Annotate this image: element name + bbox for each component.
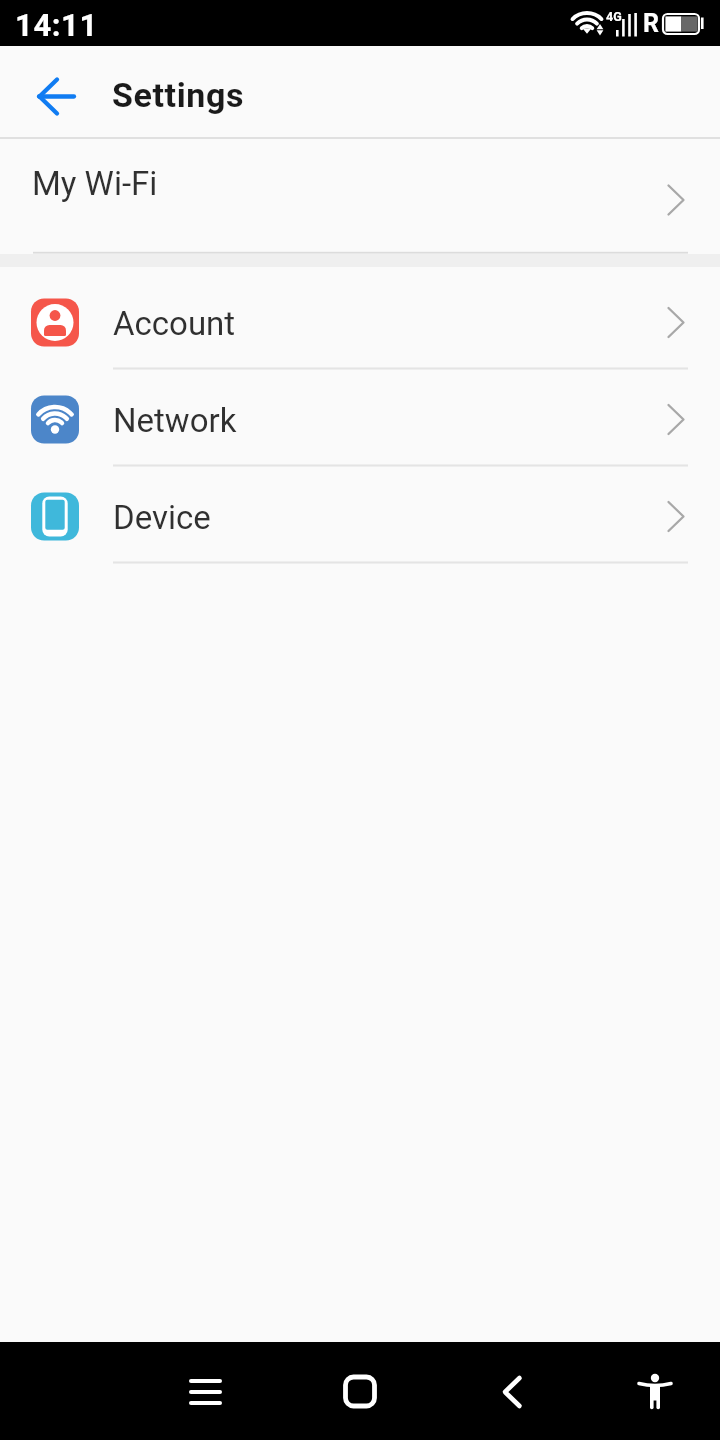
staticText: R: [643, 9, 659, 38]
staticText: Settings: [112, 75, 245, 115]
staticText: 4G: [606, 9, 622, 24]
staticText: Network: [113, 401, 237, 440]
staticText: Account: [113, 304, 236, 343]
staticText: My Wi-Fi: [32, 164, 158, 203]
staticText: 14:11: [15, 7, 98, 43]
staticText: Device: [113, 498, 211, 537]
